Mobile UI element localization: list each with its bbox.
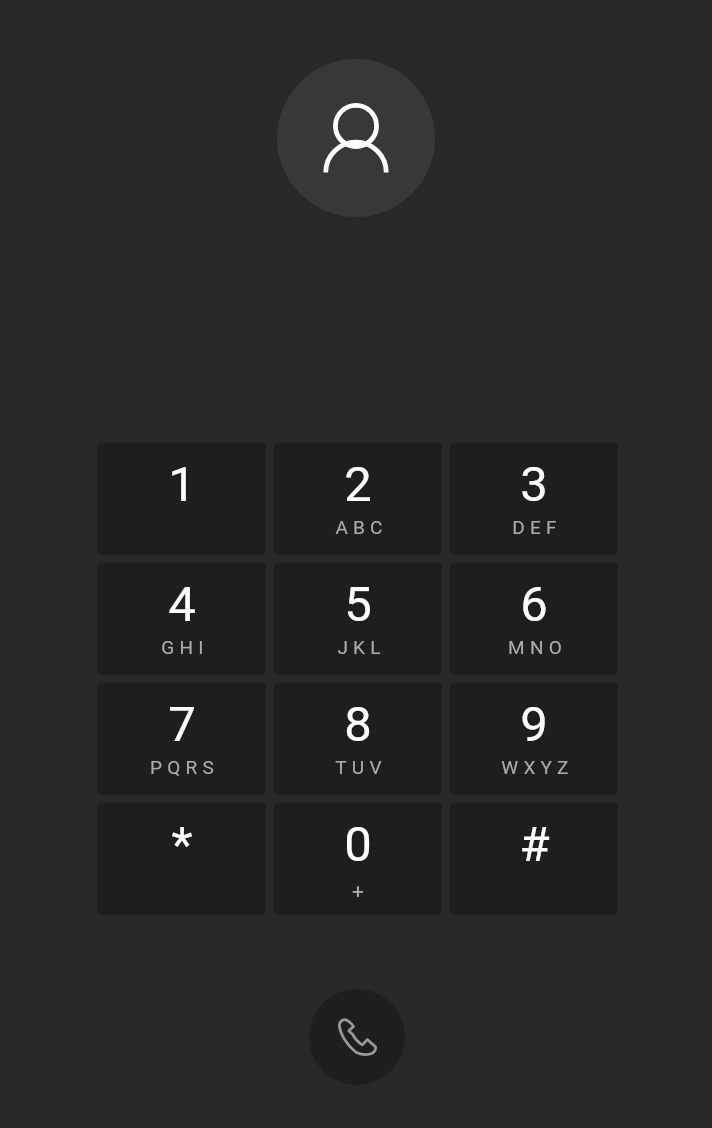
staticText: 7 <box>168 696 196 753</box>
staticText: 4 <box>168 576 196 633</box>
button[interactable]: # <box>450 803 618 915</box>
button[interactable]: Contact avatar <box>277 59 435 217</box>
staticText: 8 <box>344 696 372 753</box>
staticText: WXYZ <box>501 756 574 778</box>
staticText: * <box>171 816 193 873</box>
button[interactable]: 8 <box>274 683 442 795</box>
staticText: 1 <box>168 456 196 513</box>
staticText: 3 <box>520 456 548 513</box>
staticText: 6 <box>520 576 548 633</box>
staticText: GHI <box>161 636 209 658</box>
button[interactable]: 0 <box>274 803 442 915</box>
staticText: + <box>352 879 364 904</box>
staticText: MNO <box>508 636 567 658</box>
staticText: JKL <box>337 636 386 658</box>
button[interactable]: 4 <box>97 563 266 675</box>
button[interactable]: 3 <box>450 443 618 555</box>
button[interactable]: * <box>97 803 266 915</box>
staticText: 9 <box>520 696 548 753</box>
staticText: DEF <box>512 516 562 538</box>
staticText: TUV <box>335 756 387 778</box>
button[interactable]: Call <box>309 989 405 1085</box>
staticText: 0 <box>344 816 372 873</box>
staticText: # <box>519 816 550 873</box>
button[interactable]: 1 <box>97 443 266 555</box>
staticText: PQRS <box>150 756 219 778</box>
button[interactable]: 9 <box>450 683 618 795</box>
button[interactable]: 6 <box>450 563 618 675</box>
staticText: ABC <box>335 516 388 538</box>
staticText: 5 <box>344 576 372 633</box>
staticText: 2 <box>344 456 372 513</box>
button[interactable]: 7 <box>97 683 266 795</box>
button[interactable]: 5 <box>274 563 442 675</box>
button[interactable]: 2 <box>274 443 442 555</box>
